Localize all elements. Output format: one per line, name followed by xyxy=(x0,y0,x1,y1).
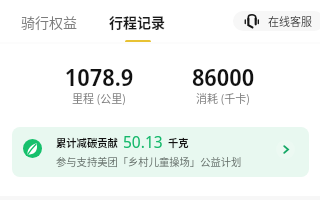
staticText: 在线客服 xyxy=(268,13,312,29)
staticText: 行程记录 xyxy=(109,12,165,32)
staticText: 累计减碳贡献 xyxy=(56,135,118,150)
button[interactable]: 在线客服 xyxy=(233,11,320,31)
staticText: 1078.9 xyxy=(29,61,169,92)
staticText: 里程 (公里) xyxy=(29,90,169,106)
staticText: 千克 xyxy=(168,135,189,150)
button[interactable]: 累计减碳贡献 xyxy=(12,127,309,177)
staticText: 50.13 xyxy=(123,131,163,152)
staticText: 骑行权益 xyxy=(21,12,77,32)
button[interactable]: 骑行权益 xyxy=(15,8,83,36)
staticText: 参与支持美团「乡村儿童操场」公益计划 xyxy=(56,154,242,169)
button[interactable]: 行程记录 xyxy=(103,8,171,36)
other: 在线客服 xyxy=(244,14,259,28)
staticText: 86000 xyxy=(153,61,293,92)
button[interactable]: 1078.9 xyxy=(29,61,169,109)
staticText: 消耗 (千卡) xyxy=(153,90,293,106)
button[interactable]: 86000 xyxy=(153,61,293,109)
